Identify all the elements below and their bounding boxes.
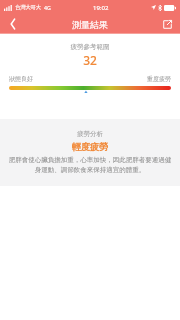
staticText: 疲勞分析: [77, 130, 103, 138]
button[interactable]: Back: [0, 15, 26, 33]
staticText: 19:02: [93, 4, 109, 12]
button[interactable]: Share: [154, 15, 180, 33]
staticText: 輕度疲勞: [72, 141, 108, 152]
staticText: 測量結果: [72, 19, 108, 30]
staticText: 狀態良好: [9, 75, 33, 83]
staticText: 肥胖會使心臟負擔加重，心率加快，因此肥胖者要通過健身運動、調節飲食來保持適宜的體…: [8, 156, 172, 174]
staticText: 4G: [44, 4, 51, 11]
staticText: 疲勞參考範圍: [0, 43, 180, 51]
staticText: 台灣大哥大: [15, 4, 41, 11]
staticText: 重度疲勞: [147, 75, 171, 83]
staticText: 32: [0, 52, 180, 68]
